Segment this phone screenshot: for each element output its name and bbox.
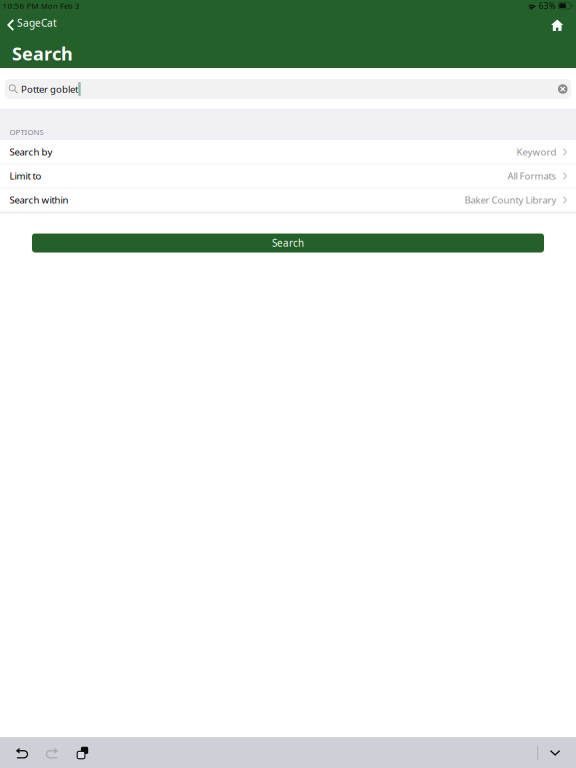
- staticText: Mon Feb 3: [41, 1, 79, 11]
- button[interactable]: Search within: [0, 188, 576, 213]
- staticText: Limit to: [10, 169, 42, 182]
- staticText: 63%: [539, 0, 556, 11]
- button[interactable]: Undo: [0, 737, 39, 768]
- button[interactable]: Redo: [39, 737, 66, 768]
- staticText: Search: [272, 236, 304, 250]
- staticText: 10:56 PM: [2, 0, 38, 11]
- button[interactable]: Clear text: [553, 79, 571, 99]
- button[interactable]: Search by: [0, 140, 576, 164]
- staticText: Search: [12, 41, 73, 66]
- button[interactable]: SageCat: [0, 13, 65, 36]
- staticText: Baker County Library: [465, 193, 557, 206]
- staticText: All Formats: [508, 169, 557, 182]
- staticText: SageCat: [17, 16, 57, 30]
- button[interactable]: Search: [32, 233, 544, 252]
- staticText: OPTIONS: [10, 127, 44, 137]
- button[interactable]: Hide keyboard: [538, 737, 576, 768]
- staticText: Keyword: [517, 145, 557, 158]
- button[interactable]: Paste: [66, 737, 99, 768]
- staticText: Search by: [10, 145, 53, 158]
- button[interactable]: Home: [541, 13, 576, 36]
- staticText: Search within: [10, 193, 69, 206]
- staticText: Potter goblet: [21, 82, 78, 96]
- button[interactable]: Limit to: [0, 164, 576, 188]
